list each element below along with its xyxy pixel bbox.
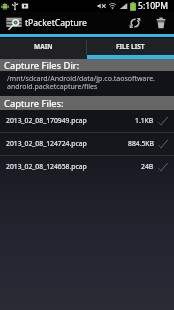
staticText: /mnt/sdcard/Android/data/jp.co.taosoftwa…	[7, 74, 155, 91]
staticText: 24B	[141, 162, 154, 171]
staticText: MAIN	[34, 42, 53, 51]
button[interactable]: 2013_02_08_124658.pcap	[0, 156, 174, 178]
button[interactable]: MAIN	[0, 38, 86, 59]
button[interactable]: 2013_02_08_170949.pcap	[0, 110, 174, 132]
staticText: 5:10PM	[138, 0, 169, 12]
staticText: tPacketCapture	[25, 17, 87, 29]
button[interactable]: FILE LIST	[87, 38, 174, 59]
button[interactable]: 2013_02_08_124724.pcap	[0, 133, 174, 155]
staticText: Capture Files Dir:	[4, 59, 80, 71]
button[interactable]: Delete	[148, 12, 174, 34]
staticText: 2013_02_08_124724.pcap	[6, 139, 87, 148]
staticText: 2013_02_08_170949.pcap	[6, 116, 87, 125]
staticText: 1.1KB	[135, 116, 154, 125]
button[interactable]: Refresh	[122, 12, 148, 34]
staticText: Capture Files:	[4, 97, 64, 110]
staticText: 884.5KB	[128, 139, 154, 148]
staticText: FILE LIST	[116, 42, 145, 51]
staticText: 2013_02_08_124658.pcap	[6, 162, 87, 171]
